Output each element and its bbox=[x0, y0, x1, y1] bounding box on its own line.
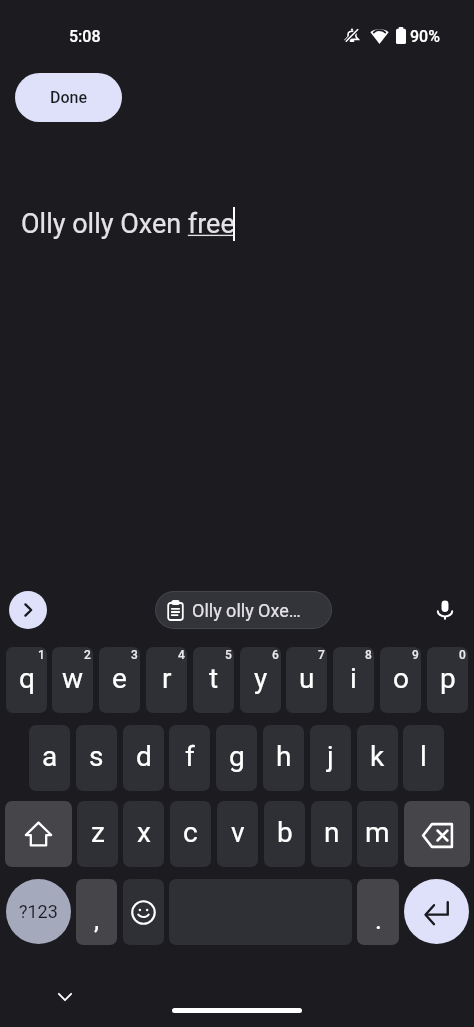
staticText: x bbox=[137, 816, 151, 849]
button[interactable]: . bbox=[357, 879, 399, 945]
staticText: 0 bbox=[459, 648, 466, 662]
staticText: 9 bbox=[412, 648, 419, 662]
button[interactable]: d bbox=[123, 725, 164, 791]
button[interactable]: p bbox=[427, 647, 468, 713]
staticText: 3 bbox=[131, 648, 138, 662]
staticText: d bbox=[136, 740, 152, 773]
button[interactable]: q bbox=[6, 647, 47, 713]
staticText: l bbox=[420, 740, 427, 773]
button[interactable]: l bbox=[403, 725, 444, 791]
staticText: 7 bbox=[318, 648, 325, 662]
staticText: 8 bbox=[365, 648, 372, 662]
button[interactable]: z bbox=[77, 801, 118, 867]
staticText: t bbox=[209, 662, 219, 695]
staticText: i bbox=[350, 662, 357, 695]
staticText: z bbox=[91, 816, 105, 849]
button[interactable]: , bbox=[76, 879, 117, 945]
button[interactable]: y bbox=[240, 647, 281, 713]
button[interactable]: h bbox=[263, 725, 304, 791]
staticText: , bbox=[94, 905, 100, 935]
staticText: k bbox=[370, 740, 385, 773]
button[interactable]: m bbox=[357, 801, 398, 867]
button[interactable]: ?123 bbox=[6, 879, 71, 944]
button[interactable]: b bbox=[264, 801, 305, 867]
staticText: a bbox=[42, 740, 58, 773]
button[interactable]: j bbox=[310, 725, 351, 791]
staticText: e bbox=[112, 662, 127, 695]
staticText: 4 bbox=[178, 648, 185, 662]
staticText: r bbox=[162, 662, 172, 695]
staticText: m bbox=[365, 816, 390, 849]
staticText: c bbox=[183, 816, 198, 849]
button[interactable]: t bbox=[193, 647, 234, 713]
staticText: Olly olly Oxen free bbox=[21, 208, 235, 240]
staticText: b bbox=[277, 816, 293, 849]
button[interactable]: Hide keyboard bbox=[52, 984, 78, 1010]
button[interactable]: Enter bbox=[404, 879, 469, 944]
staticText: 6 bbox=[272, 648, 279, 662]
button[interactable]: o bbox=[380, 647, 421, 713]
button[interactable]: g bbox=[216, 725, 257, 791]
button[interactable]: Backspace bbox=[404, 801, 470, 867]
button[interactable]: f bbox=[169, 725, 210, 791]
button[interactable]: Voice input bbox=[428, 593, 462, 627]
button[interactable]: x bbox=[123, 801, 164, 867]
staticText: v bbox=[231, 816, 245, 849]
staticText: 90% bbox=[410, 27, 440, 46]
staticText: 5 bbox=[225, 648, 232, 662]
staticText: n bbox=[324, 816, 340, 849]
staticText: s bbox=[89, 740, 104, 773]
button[interactable]: k bbox=[357, 725, 398, 791]
button[interactable]: Olly olly Oxe… bbox=[155, 591, 332, 629]
staticText: . bbox=[375, 905, 382, 935]
staticText: o bbox=[393, 662, 409, 695]
button[interactable]: i bbox=[333, 647, 374, 713]
staticText: ?123 bbox=[19, 901, 58, 922]
button[interactable]: u bbox=[286, 647, 327, 713]
staticText: y bbox=[254, 662, 268, 695]
staticText: Olly olly Oxe… bbox=[192, 600, 301, 621]
staticText: j bbox=[327, 740, 334, 773]
staticText: 2 bbox=[84, 648, 91, 662]
button[interactable]: w bbox=[52, 647, 93, 713]
staticText: f bbox=[185, 740, 195, 773]
button[interactable]: v bbox=[217, 801, 258, 867]
staticText: q bbox=[19, 662, 35, 695]
button[interactable]: a bbox=[29, 725, 70, 791]
button[interactable]: Shift bbox=[5, 801, 72, 867]
staticText: h bbox=[276, 740, 292, 773]
button[interactable]: c bbox=[170, 801, 211, 867]
staticText: 1 bbox=[38, 648, 45, 662]
button[interactable]: Done bbox=[15, 73, 122, 122]
button[interactable]: Expand toolbar bbox=[9, 591, 47, 629]
staticText: p bbox=[440, 662, 456, 695]
staticText: Done bbox=[50, 88, 88, 107]
staticText: g bbox=[229, 740, 245, 773]
button[interactable]: Emoji bbox=[123, 879, 164, 945]
staticText: u bbox=[299, 662, 315, 695]
button[interactable]: s bbox=[76, 725, 117, 791]
button[interactable]: e bbox=[99, 647, 140, 713]
staticText: w bbox=[62, 662, 84, 695]
button[interactable]: n bbox=[311, 801, 352, 867]
button[interactable]: r bbox=[146, 647, 187, 713]
staticText: 5:08 bbox=[69, 27, 101, 46]
